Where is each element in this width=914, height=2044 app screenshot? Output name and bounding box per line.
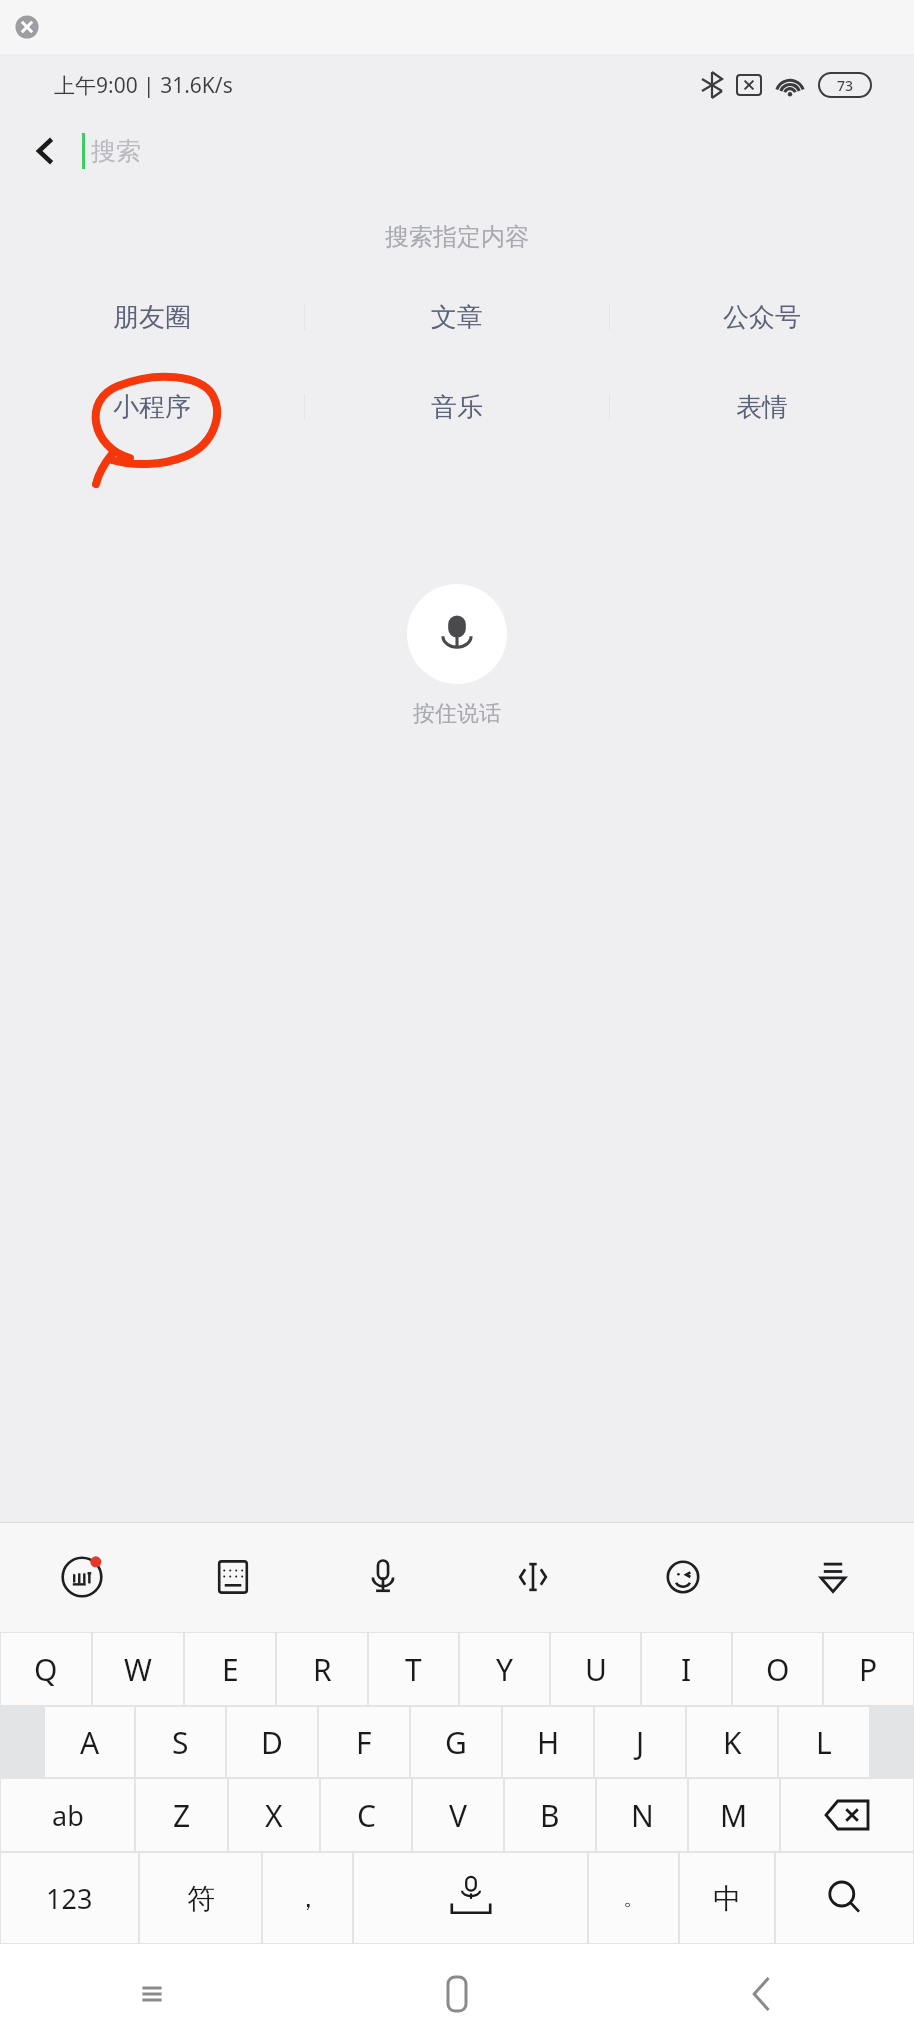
staticText: T — [405, 1649, 422, 1690]
button[interactable]: K — [687, 1707, 777, 1777]
staticText: W — [124, 1649, 152, 1690]
button[interactable]: 音乐 — [305, 370, 609, 444]
button[interactable]: J — [595, 1707, 685, 1777]
staticText: Z — [173, 1795, 191, 1836]
button[interactable]: F — [319, 1707, 409, 1777]
button[interactable]: B — [505, 1779, 595, 1851]
button[interactable]: 文章 — [305, 280, 609, 354]
staticText: G — [445, 1722, 467, 1763]
button[interactable]: Hide keyboard — [758, 1522, 908, 1632]
staticText: U — [585, 1649, 607, 1690]
staticText: C — [357, 1795, 376, 1836]
button[interactable]: V — [413, 1779, 503, 1851]
staticText: F — [356, 1722, 372, 1763]
button[interactable]: Home — [304, 1944, 609, 2044]
button[interactable]: Back — [18, 123, 74, 179]
staticText: 73 — [837, 76, 854, 95]
button[interactable]: 符 — [140, 1853, 261, 1943]
button[interactable]: R — [277, 1633, 367, 1705]
staticText: 音乐 — [431, 391, 483, 424]
button[interactable]: P — [824, 1633, 913, 1705]
staticText: B — [540, 1795, 560, 1836]
staticText: V — [449, 1795, 467, 1836]
staticText: ， — [295, 1882, 321, 1915]
staticText: X — [265, 1795, 283, 1836]
button[interactable]: D — [227, 1707, 317, 1777]
button[interactable]: Recent apps — [0, 1944, 304, 2044]
button[interactable]: H — [503, 1707, 593, 1777]
button[interactable]: N — [597, 1779, 687, 1851]
button[interactable]: Space — [354, 1853, 587, 1943]
staticText: 搜索 — [91, 136, 141, 167]
button[interactable]: Keyboard — [157, 1522, 308, 1632]
button[interactable]: U — [551, 1633, 640, 1705]
staticText: E — [222, 1649, 239, 1690]
staticText: 上午9:00 | 31.6K/s — [54, 71, 233, 100]
button[interactable]: L — [779, 1707, 869, 1777]
staticText: 表情 — [736, 391, 788, 424]
button[interactable]: Z — [136, 1779, 227, 1851]
staticText: 文章 — [431, 301, 483, 334]
staticText: A — [80, 1722, 100, 1763]
button[interactable]: G — [411, 1707, 501, 1777]
button[interactable]: Q — [1, 1633, 91, 1705]
staticText: 中 — [713, 1881, 741, 1916]
button[interactable]: Edit cursor — [458, 1522, 608, 1632]
staticText: Y — [496, 1649, 513, 1690]
staticText: I — [681, 1649, 692, 1690]
staticText: P — [859, 1649, 878, 1690]
button[interactable]: ， — [263, 1853, 352, 1943]
staticText: K — [723, 1722, 742, 1763]
staticText: S — [172, 1722, 189, 1763]
button[interactable]: A — [45, 1707, 134, 1777]
button[interactable]: 123 — [1, 1853, 138, 1943]
staticText: 123 — [46, 1880, 93, 1917]
staticText: ab — [52, 1797, 84, 1834]
button[interactable]: ab — [1, 1779, 134, 1851]
staticText: L — [816, 1722, 832, 1763]
staticText: O — [766, 1649, 790, 1690]
button[interactable]: 朋友圈 — [0, 280, 304, 354]
button[interactable]: Voice input — [308, 1522, 458, 1632]
button[interactable]: 小程序 — [0, 370, 304, 444]
button[interactable]: O — [733, 1633, 822, 1705]
staticText: M — [720, 1795, 748, 1836]
button[interactable]: Close — [10, 10, 44, 44]
staticText: 朋友圈 — [113, 301, 191, 334]
staticText: 按住说话 — [413, 700, 501, 728]
button[interactable]: Back — [609, 1944, 914, 2044]
staticText: Q — [34, 1649, 58, 1690]
button[interactable]: 。 — [589, 1853, 678, 1943]
button[interactable]: E — [185, 1633, 275, 1705]
button[interactable]: 公众号 — [610, 280, 914, 354]
button[interactable]: M — [689, 1779, 779, 1851]
button[interactable]: T — [369, 1633, 458, 1705]
button[interactable]: Backspace — [781, 1779, 913, 1851]
button[interactable]: S — [136, 1707, 225, 1777]
button[interactable]: Search — [776, 1853, 913, 1943]
button[interactable]: Input method — [6, 1522, 157, 1632]
button[interactable]: Y — [460, 1633, 549, 1705]
button[interactable]: Hold to talk — [407, 584, 507, 684]
button[interactable]: C — [321, 1779, 411, 1851]
staticText: 搜索指定内容 — [385, 222, 529, 252]
button[interactable]: 表情 — [610, 370, 914, 444]
staticText: N — [631, 1795, 654, 1836]
staticText: H — [537, 1722, 560, 1763]
staticText: 公众号 — [723, 301, 801, 334]
button[interactable]: I — [642, 1633, 731, 1705]
staticText: 符 — [187, 1881, 215, 1916]
staticText: 小程序 — [113, 391, 191, 424]
button[interactable]: W — [93, 1633, 183, 1705]
staticText: D — [261, 1722, 283, 1763]
staticText: 。 — [623, 1884, 645, 1912]
staticText: J — [636, 1722, 645, 1763]
staticText: R — [313, 1649, 332, 1690]
button[interactable]: 中 — [680, 1853, 774, 1943]
button[interactable]: Emoji — [608, 1522, 758, 1632]
button[interactable]: X — [229, 1779, 319, 1851]
